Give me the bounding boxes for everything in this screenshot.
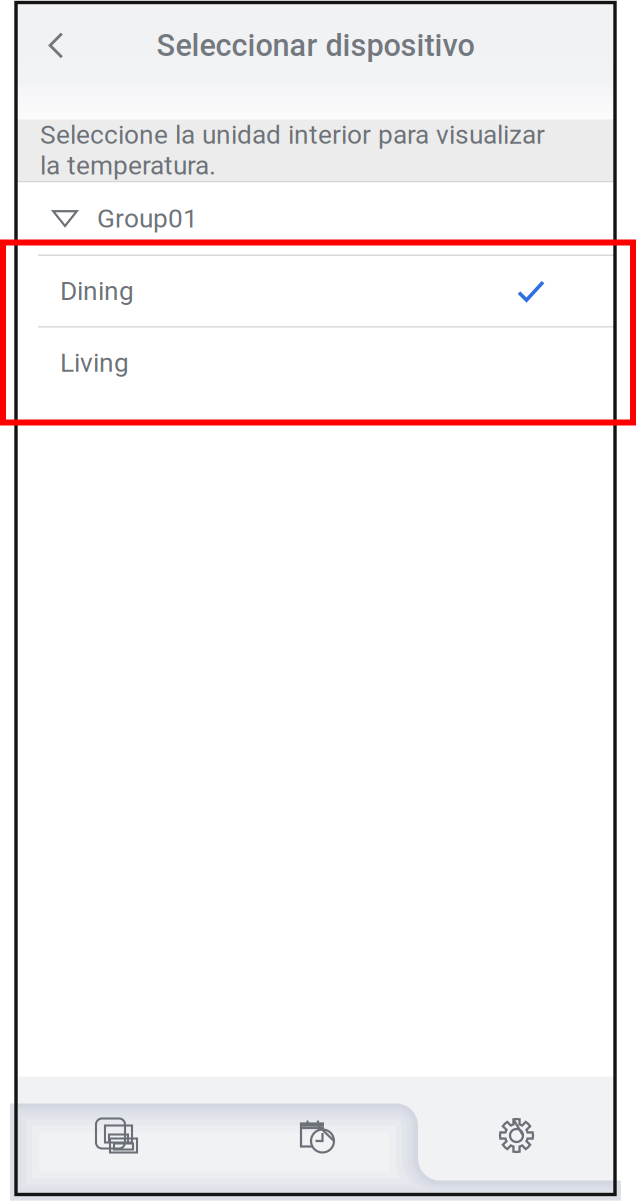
staticText: Seleccionar dispositivo xyxy=(156,27,474,63)
button[interactable]: Back xyxy=(19,13,93,77)
button[interactable]: Dining xyxy=(16,256,615,326)
button[interactable]: Schedule xyxy=(217,1076,418,1194)
button[interactable]: Devices xyxy=(16,1076,217,1194)
staticText: Living xyxy=(60,347,129,378)
button[interactable]: Group01 xyxy=(16,182,615,254)
staticText: Group01 xyxy=(97,203,198,234)
staticText: Seleccione la unidad interior para visua… xyxy=(40,119,545,181)
button[interactable]: Settings xyxy=(418,1076,615,1194)
button[interactable]: Living xyxy=(16,328,615,398)
staticText: Dining xyxy=(60,276,134,306)
